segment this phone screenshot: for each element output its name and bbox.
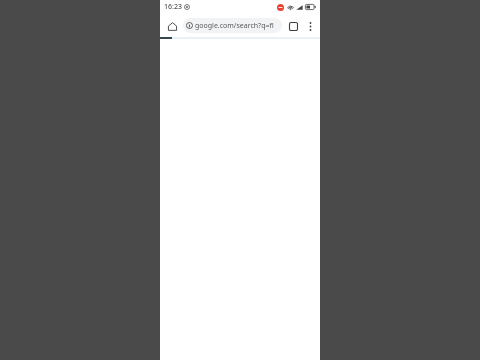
staticText: google.com/search?q=fl [195, 21, 274, 31]
staticText: 16:23 [164, 2, 182, 12]
button[interactable]: google.com/search?q=fl [183, 18, 282, 33]
button[interactable]: Switch tabs [284, 17, 302, 35]
button[interactable]: More options [302, 18, 318, 34]
button[interactable]: Home [163, 17, 181, 35]
